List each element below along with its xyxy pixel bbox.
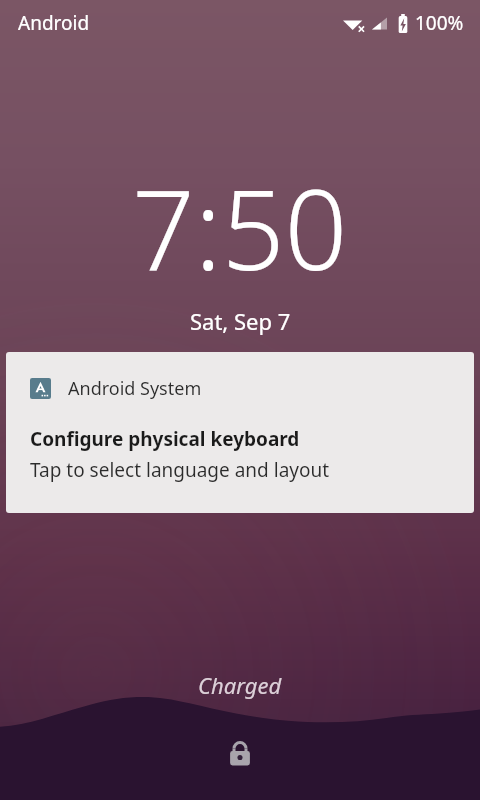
staticText: Sat, Sep 7 xyxy=(190,306,291,336)
staticText: Android System xyxy=(68,376,202,401)
button[interactable]: Unlock xyxy=(216,730,264,778)
staticText: 100% xyxy=(415,10,464,36)
staticText: Configure physical keyboard xyxy=(30,426,300,452)
staticText: Charged xyxy=(198,670,282,700)
staticText: Tap to select language and layout xyxy=(30,457,330,483)
staticText: Android xyxy=(18,10,90,36)
staticText: 7:50 xyxy=(132,152,348,302)
button[interactable]: Android System xyxy=(6,352,474,513)
